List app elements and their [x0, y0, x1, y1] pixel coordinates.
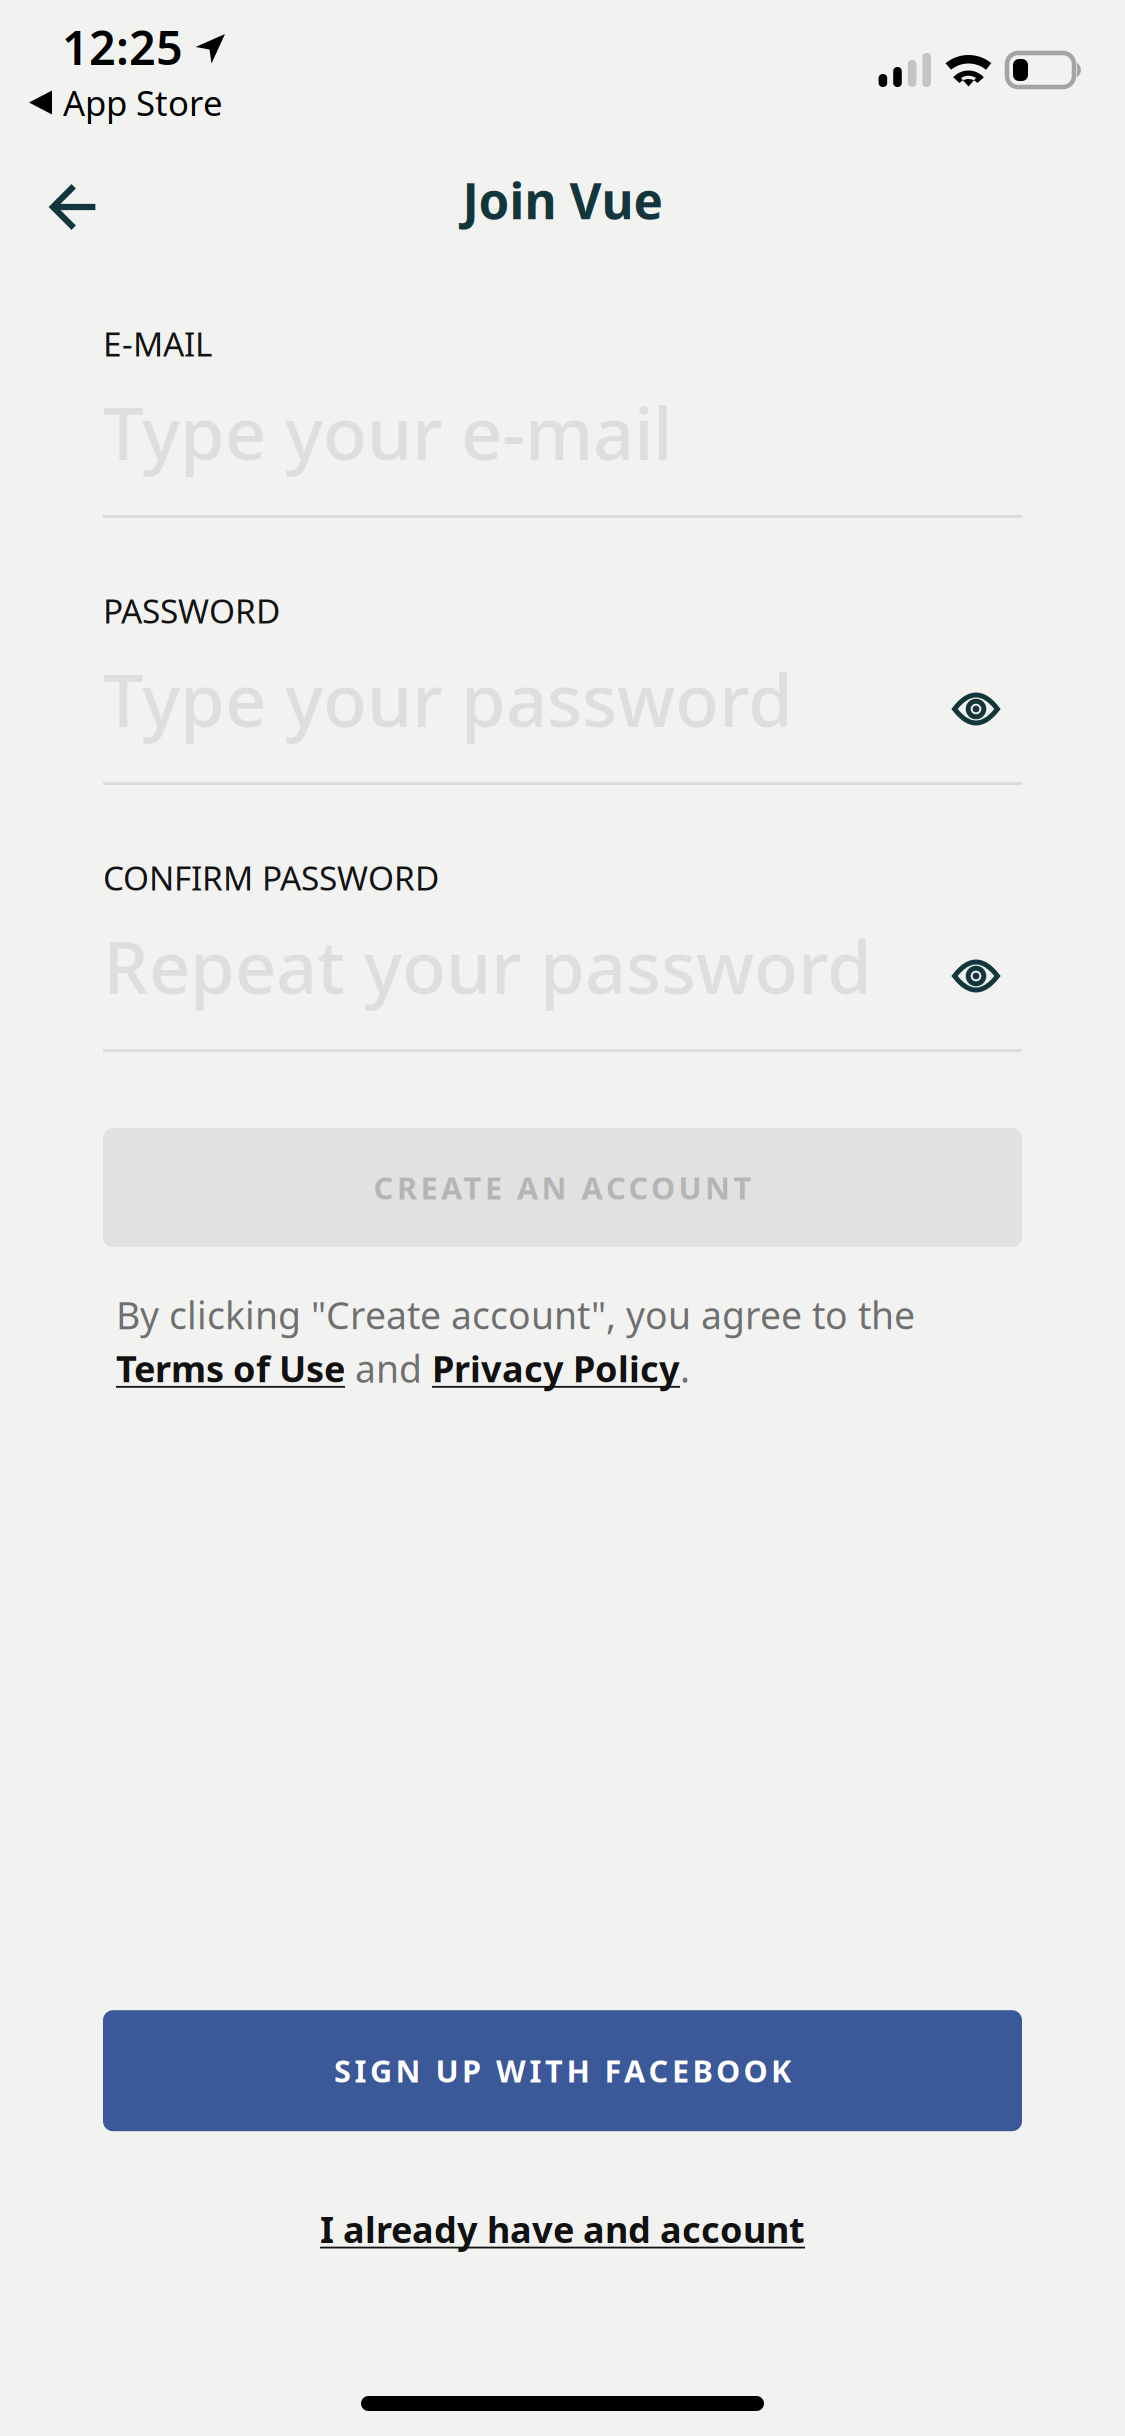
- staticText: I already have and account: [320, 2205, 805, 2253]
- button[interactable]: Reveal confirm password: [952, 941, 1022, 1013]
- button[interactable]: SIGN UP WITH FACEBOOK: [103, 2010, 1022, 2131]
- button[interactable]: Terms of Use: [116, 1344, 345, 1392]
- staticText: E-MAIL: [103, 321, 212, 366]
- staticText: Terms of Use: [116, 1344, 345, 1392]
- staticText: CONFIRM PASSWORD: [103, 855, 439, 900]
- staticText: SIGN UP WITH FACEBOOK: [334, 2050, 791, 2091]
- staticText: Join Vue: [462, 167, 662, 233]
- staticText: .: [680, 1344, 690, 1393]
- staticText: Repeat your password: [103, 918, 872, 1014]
- button[interactable]: Reveal password: [952, 674, 1022, 746]
- staticText: By clicking "Create account", you agree …: [116, 1290, 915, 1340]
- staticText: App Store: [63, 79, 223, 125]
- staticText: Type your password: [103, 651, 793, 747]
- button[interactable]: I already have and account: [320, 2205, 805, 2253]
- button[interactable]: CREATE AN ACCOUNT: [103, 1128, 1022, 1247]
- staticText: Privacy Policy: [432, 1344, 680, 1392]
- staticText: PASSWORD: [103, 588, 280, 633]
- staticText: and: [345, 1344, 432, 1393]
- staticText: 12:25: [62, 16, 183, 78]
- button[interactable]: Back: [0, 162, 144, 252]
- staticText: Type your e-mail: [103, 384, 672, 480]
- button[interactable]: Privacy Policy: [432, 1344, 680, 1392]
- staticText: CREATE AN ACCOUNT: [373, 1167, 751, 1208]
